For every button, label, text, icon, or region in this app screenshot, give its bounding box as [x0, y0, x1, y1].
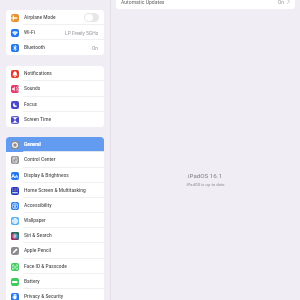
button[interactable]: Privacy & Security — [6, 289, 104, 300]
button[interactable]: Bluetooth — [6, 40, 104, 55]
staticText: Wallpaper — [24, 218, 46, 224]
button[interactable]: Airplane Mode — [6, 10, 104, 25]
button[interactable]: Wallpaper — [6, 213, 104, 228]
staticText: Display & Brightness — [24, 173, 69, 179]
button[interactable]: Focus — [6, 97, 104, 112]
button[interactable]: Display & Brightness — [6, 168, 104, 183]
button[interactable]: Screen Time — [6, 112, 104, 127]
staticText: Accessibility — [24, 203, 52, 209]
staticText: iPadOS is up to date — [186, 182, 225, 187]
button[interactable]: Home Screen & Multitasking — [6, 183, 104, 198]
button[interactable]: Accessibility — [6, 198, 104, 213]
button[interactable]: Siri & Search — [6, 228, 104, 243]
staticText: iPadOS 16.1 — [188, 172, 222, 179]
button[interactable]: Notifications — [6, 66, 104, 81]
staticText: Automatic Updates — [121, 0, 165, 5]
button[interactable]: Face ID & Passcode — [6, 259, 104, 274]
staticText: Notifications — [24, 71, 52, 77]
staticText: On — [278, 0, 285, 5]
staticText: Face ID & Passcode — [24, 264, 67, 270]
staticText: Sounds — [24, 86, 41, 92]
staticText: Bluetooth — [24, 45, 45, 51]
staticText: Wi-Fi — [24, 30, 35, 36]
staticText: Focus — [24, 102, 38, 108]
button[interactable]: Wi-Fi — [6, 25, 104, 40]
staticText: Privacy & Security — [24, 294, 64, 300]
staticText: On — [92, 45, 99, 51]
staticText: Apple Pencil — [24, 248, 51, 254]
staticText: Control Center — [24, 157, 56, 163]
staticText: Siri & Search — [24, 233, 52, 239]
staticText: Battery — [24, 279, 40, 285]
button[interactable]: Apple Pencil — [6, 243, 104, 259]
staticText: General — [24, 142, 41, 148]
staticText: LP Freely 5GHz — [65, 30, 99, 36]
staticText: Screen Time — [24, 117, 52, 123]
button[interactable]: General — [6, 137, 104, 152]
button[interactable]: Battery — [6, 274, 104, 289]
staticText: Home Screen & Multitasking — [24, 188, 86, 194]
button[interactable]: Control Center — [6, 152, 104, 168]
staticText: Airplane Mode — [24, 15, 56, 21]
button[interactable]: Airplane Mode toggle — [84, 13, 99, 22]
button[interactable]: Sounds — [6, 81, 104, 97]
button[interactable]: Automatic Updates — [116, 0, 295, 9]
